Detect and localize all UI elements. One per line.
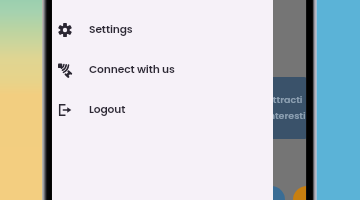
staticText: Interesting [266, 109, 306, 122]
button[interactable]: Connect with us [52, 50, 273, 90]
staticText: Attractions [266, 93, 306, 106]
staticText: Logout [89, 102, 126, 117]
button[interactable]: Logout [52, 90, 273, 130]
staticText: Connect with us [89, 62, 175, 77]
button[interactable]: Settings [52, 10, 273, 50]
button[interactable]: Attractions [212, 77, 306, 139]
staticText: Settings [89, 22, 133, 37]
